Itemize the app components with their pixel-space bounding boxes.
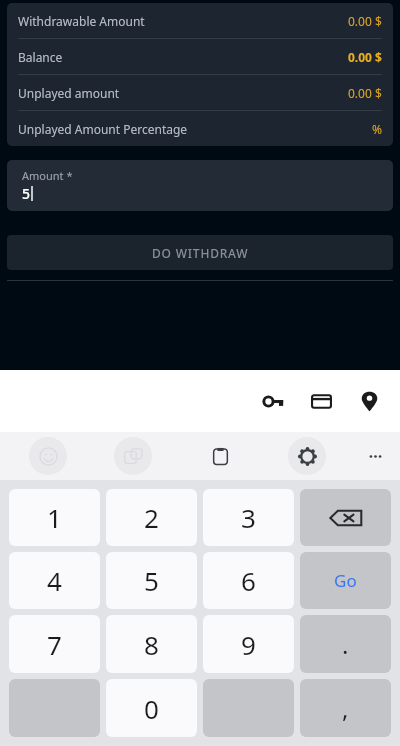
staticText: 4 (47, 563, 62, 598)
button[interactable]: Keyboard option (356, 437, 394, 475)
button[interactable]: 5 (106, 552, 197, 609)
button[interactable]: Addresses (348, 380, 390, 422)
button[interactable]: Unplayed Amount Percentage (7, 111, 393, 146)
button[interactable]: 0 (106, 679, 197, 737)
staticText: 9 (241, 627, 256, 662)
button[interactable]: DO WITHDRAW (7, 235, 393, 270)
staticText: Go (334, 569, 357, 592)
staticText: 0.00 $ (348, 49, 382, 65)
button[interactable]: . (300, 615, 391, 673)
staticText: 5 (144, 563, 159, 598)
staticText: 0.00 $ (348, 13, 382, 29)
button[interactable]: Payment methods (300, 380, 342, 422)
staticText: 0.00 $ (348, 85, 382, 101)
staticText: Unplayed amount (18, 85, 120, 101)
staticText: 7 (47, 627, 62, 662)
staticText: , (342, 692, 349, 725)
staticText: % (372, 121, 382, 137)
button[interactable]: Unplayed amount (7, 75, 393, 111)
staticText: 8 (144, 627, 159, 662)
button[interactable]: 4 (9, 552, 100, 609)
staticText: Unplayed Amount Percentage (18, 121, 188, 137)
staticText: 6 (241, 563, 256, 598)
button[interactable]: 7 (9, 615, 100, 673)
button[interactable]: 3 (203, 489, 294, 546)
staticText: Amount * (22, 168, 73, 183)
staticText: 0 (144, 691, 159, 726)
staticText: 2 (144, 500, 159, 535)
staticText: Balance (18, 49, 63, 65)
staticText: 3 (241, 500, 256, 535)
button[interactable]: Keyboard option (201, 437, 239, 475)
staticText: 1 (47, 500, 62, 535)
button[interactable]: Keyboard option (29, 437, 67, 475)
button[interactable]: 9 (203, 615, 294, 673)
button[interactable]: Balance (7, 39, 393, 75)
button[interactable]: 2 (106, 489, 197, 546)
button[interactable]: , (300, 679, 391, 737)
button[interactable]: Keyboard option (114, 437, 152, 475)
button[interactable]: Amount * (7, 160, 393, 211)
button[interactable]: 8 (106, 615, 197, 673)
button[interactable]: Passwords (252, 380, 294, 422)
button[interactable]: Go (300, 552, 391, 609)
button[interactable]: Delete (300, 489, 391, 546)
button[interactable]: 1 (9, 489, 100, 546)
staticText: . (342, 628, 349, 661)
button[interactable]: Keyboard option (288, 437, 326, 475)
staticText: Withdrawable Amount (18, 13, 145, 29)
staticText: 5 (22, 184, 31, 203)
staticText: DO WITHDRAW (152, 245, 249, 261)
button[interactable]: 6 (203, 552, 294, 609)
button[interactable]: Withdrawable Amount (7, 3, 393, 39)
